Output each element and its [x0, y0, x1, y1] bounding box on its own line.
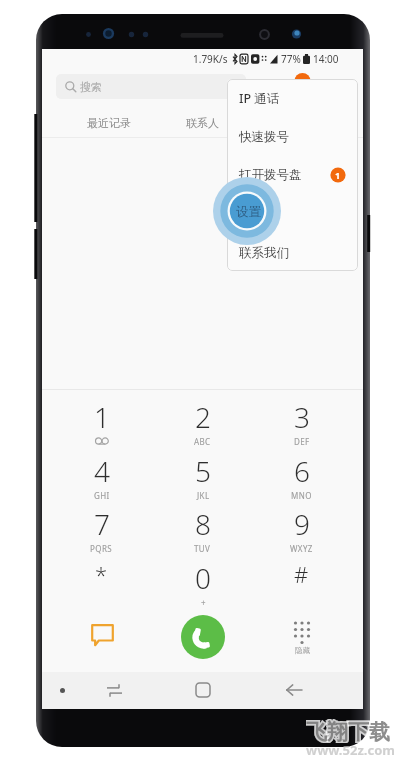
staticText: www.52z.com: [306, 741, 395, 759]
button[interactable]: 3: [251, 390, 352, 444]
button[interactable]: 2: [152, 390, 253, 444]
staticText: 1: [94, 398, 110, 436]
staticText: 联系人: [186, 116, 219, 130]
staticText: 快速拨号: [239, 129, 289, 145]
staticText: 3: [294, 398, 310, 436]
staticText: 搜索: [80, 80, 102, 94]
staticText: MNO: [291, 490, 312, 501]
button[interactable]: IP 通话: [227, 85, 358, 111]
staticText: WXYZ: [290, 543, 313, 554]
staticText: PQRS: [90, 543, 113, 554]
button[interactable]: 4: [51, 444, 152, 498]
staticText: TUV: [194, 543, 211, 554]
staticText: 最近记录: [87, 116, 131, 130]
staticText: DEF: [294, 436, 310, 447]
staticText: 4: [94, 452, 110, 490]
staticText: 隐藏: [295, 646, 310, 655]
staticText: 7: [94, 505, 110, 543]
button[interactable]: Back: [272, 672, 316, 708]
staticText: 打开拨号盘: [239, 167, 302, 183]
button[interactable]: 联系人: [184, 114, 220, 131]
staticText: 0: [195, 559, 211, 597]
staticText: 77%: [281, 52, 301, 66]
staticText: 飞翔下载: [306, 719, 390, 743]
staticText: 1: [335, 169, 341, 181]
staticText: 9: [294, 505, 310, 543]
button[interactable]: 8: [152, 497, 253, 551]
button[interactable]: Call: [181, 615, 225, 659]
button[interactable]: [227, 200, 358, 226]
button[interactable]: 5: [152, 444, 253, 498]
button[interactable]: 快速拨号: [227, 124, 358, 150]
button[interactable]: Recents: [92, 672, 136, 708]
button[interactable]: 打开拨号盘: [227, 162, 358, 188]
button[interactable]: Hide keypad: [278, 616, 326, 660]
button[interactable]: *: [51, 551, 152, 605]
button[interactable]: Hide keyboard: [40, 672, 84, 708]
button[interactable]: 设置: [212, 176, 282, 246]
staticText: ABC: [194, 436, 211, 447]
staticText: #: [294, 559, 309, 589]
staticText: GHI: [94, 490, 110, 501]
staticText: IP 通话: [239, 90, 280, 107]
button[interactable]: 7: [51, 497, 152, 551]
staticText: 5: [195, 452, 211, 490]
button[interactable]: 6: [251, 444, 352, 498]
staticText: 6: [294, 452, 310, 490]
staticText: JKL: [197, 490, 210, 501]
button[interactable]: #: [251, 551, 352, 605]
staticText: 飞翔下载: [306, 719, 390, 743]
staticText: 8: [195, 505, 211, 543]
button[interactable]: 联系我们: [227, 240, 358, 266]
staticText: 1.79K/s: [193, 52, 228, 66]
button[interactable]: 1: [51, 390, 152, 444]
staticText: *: [95, 559, 108, 589]
button[interactable]: 0: [152, 551, 253, 605]
staticText: 联系我们: [239, 245, 289, 261]
button[interactable]: 9: [251, 497, 352, 551]
staticText: +: [201, 597, 206, 608]
staticText: 14:00: [313, 52, 339, 66]
staticText: 设置: [236, 204, 261, 220]
button[interactable]: Send message: [78, 613, 126, 657]
button[interactable]: 最近记录: [83, 114, 135, 131]
button[interactable]: Home: [181, 672, 225, 708]
button[interactable]: 搜索: [56, 74, 246, 99]
staticText: 2: [195, 398, 211, 436]
